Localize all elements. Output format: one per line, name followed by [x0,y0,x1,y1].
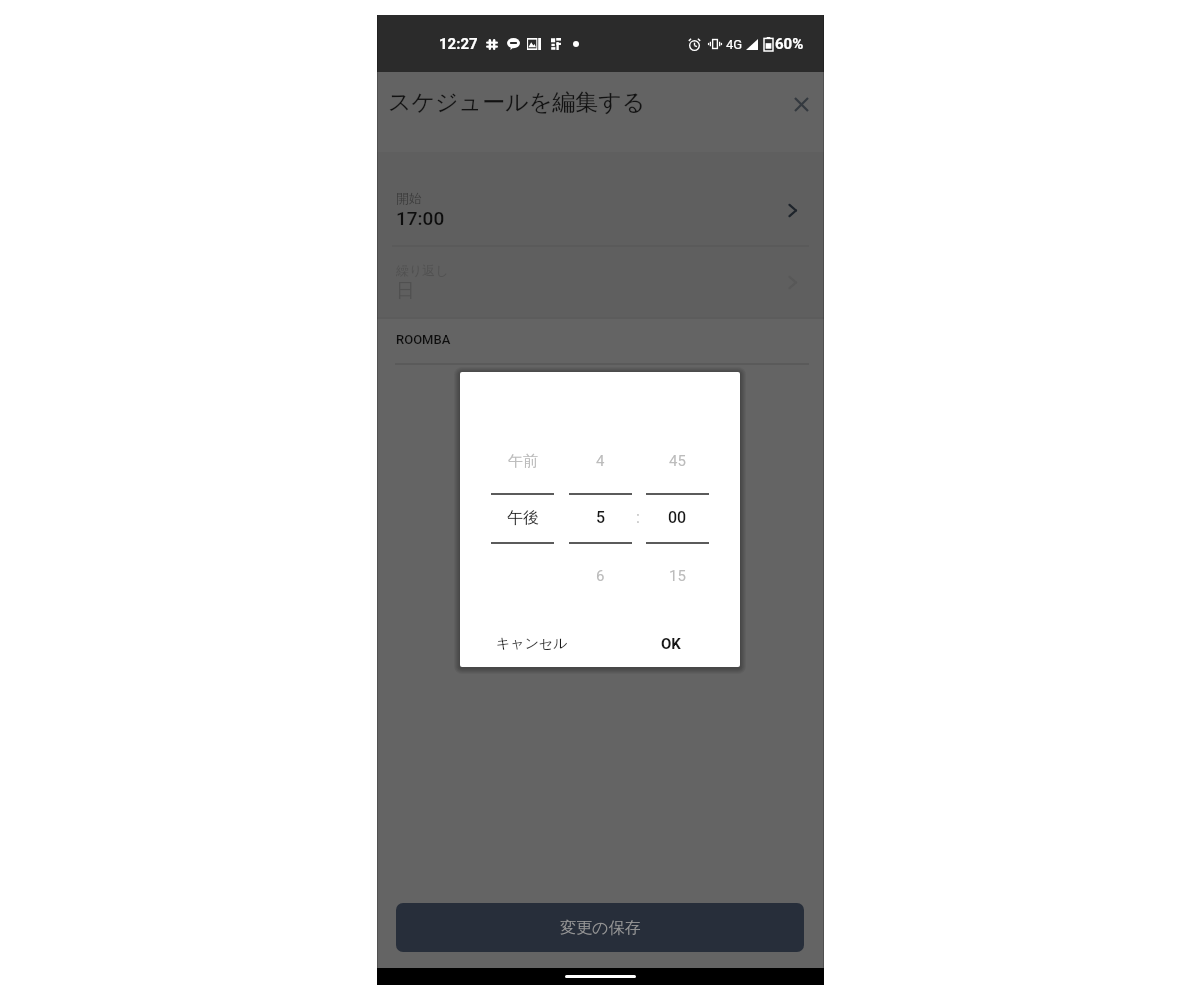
button[interactable]: 15 [646,547,709,591]
button[interactable]: キャンセル [488,624,576,664]
staticText: 午後 [507,508,539,528]
staticText: 00 [668,508,687,527]
button[interactable]: 00 [646,497,709,540]
staticText: : [636,508,640,527]
staticText: 17:00 [396,207,445,229]
staticText: 45 [669,452,686,470]
staticText: 変更の保存 [560,918,641,938]
staticText: 5 [596,508,606,527]
staticText: 12:27 [439,35,478,53]
button[interactable]: 45 [646,439,709,483]
staticText: キャンセル [496,635,568,653]
button[interactable]: 6 [569,547,632,591]
button[interactable]: Close [781,84,821,124]
button[interactable]: 4 [569,439,632,483]
button[interactable]: 5 [569,497,632,540]
staticText: 午前 [508,452,538,471]
staticText: 開始 [396,190,422,206]
button[interactable]: 午後 [491,497,554,540]
staticText: OK [661,635,681,653]
staticText: スケジュールを編集する [388,88,646,117]
staticText: 6 [596,567,605,585]
staticText: 4 [596,452,605,470]
staticText: 15 [669,567,686,585]
button[interactable]: OK [653,624,689,664]
staticText: 日 [396,279,415,303]
staticText: 60% [775,35,804,53]
staticText: 4G [726,37,743,52]
button[interactable]: 変更の保存 [396,903,804,952]
staticText: 繰り返し [396,262,449,278]
button[interactable]: 午前 [491,439,554,483]
staticText: ROOMBA [396,332,451,347]
button[interactable]: 開始 [377,152,824,245]
